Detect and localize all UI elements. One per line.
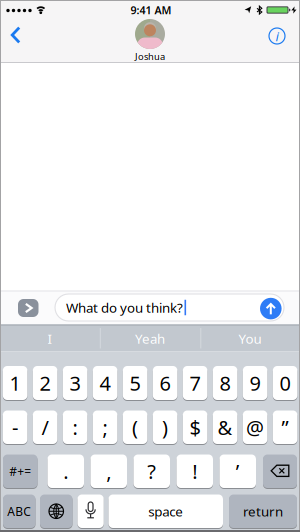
- staticText: .: [63, 458, 68, 485]
- button[interactable]: Back: [6, 24, 28, 46]
- staticText: (: [132, 414, 138, 441]
- button[interactable]: return: [229, 494, 297, 528]
- staticText: ABC: [7, 503, 31, 519]
- staticText: ’: [236, 458, 240, 485]
- button[interactable]: ABC: [3, 494, 35, 528]
- button[interactable]: Yeah: [102, 326, 198, 350]
- button[interactable]: 5: [123, 366, 147, 400]
- button[interactable]: Message field: [55, 294, 284, 321]
- staticText: You: [238, 330, 261, 347]
- button[interactable]: Send: [260, 298, 282, 319]
- staticText: Joshua: [135, 50, 165, 63]
- button[interactable]: 9: [243, 366, 267, 400]
- button[interactable]: 1: [3, 366, 27, 400]
- staticText: What do you think?: [66, 299, 183, 316]
- button[interactable]: ): [153, 410, 177, 444]
- staticText: ?: [147, 458, 156, 485]
- staticText: i: [275, 27, 278, 45]
- button[interactable]: !: [176, 454, 213, 488]
- button[interactable]: #+=: [3, 454, 37, 488]
- staticText: #+=: [9, 463, 31, 479]
- staticText: 3: [70, 370, 81, 396]
- button[interactable]: (: [123, 410, 147, 444]
- staticText: $: [190, 414, 201, 441]
- button[interactable]: space: [108, 494, 223, 528]
- staticText: 9:41 AM: [130, 3, 171, 17]
- staticText: I: [47, 330, 52, 347]
- button[interactable]: ’: [219, 454, 256, 488]
- staticText: 9: [250, 370, 261, 396]
- staticText: :: [73, 414, 78, 441]
- button[interactable]: $: [183, 410, 207, 444]
- button[interactable]: 6: [153, 366, 177, 400]
- staticText: 7: [190, 370, 201, 396]
- staticText: 8: [220, 370, 231, 396]
- button[interactable]: 0: [273, 366, 297, 400]
- staticText: 6: [160, 370, 171, 396]
- button[interactable]: Apps: [18, 299, 38, 317]
- staticText: !: [192, 458, 197, 485]
- button[interactable]: 8: [213, 366, 237, 400]
- staticText: ;: [103, 414, 108, 441]
- button[interactable]: -: [3, 410, 27, 444]
- button[interactable]: ?: [133, 454, 170, 488]
- button[interactable]: Next keyboard: [40, 494, 72, 528]
- staticText: 0: [280, 370, 291, 396]
- staticText: -: [12, 414, 18, 441]
- staticText: return: [243, 502, 283, 520]
- button[interactable]: Details: [269, 27, 285, 45]
- staticText: 1: [10, 370, 21, 396]
- staticText: @: [246, 414, 264, 441]
- staticText: 4: [100, 370, 111, 396]
- button[interactable]: Delete: [263, 454, 297, 488]
- staticText: &: [218, 414, 233, 441]
- staticText: ): [162, 414, 168, 441]
- button[interactable]: ;: [93, 410, 117, 444]
- button[interactable]: /: [33, 410, 57, 444]
- staticText: ,: [106, 458, 111, 485]
- staticText: 5: [130, 370, 141, 396]
- button[interactable]: 4: [93, 366, 117, 400]
- button[interactable]: &: [213, 410, 237, 444]
- staticText: /: [42, 414, 49, 441]
- button[interactable]: Joshua profile: [135, 19, 165, 49]
- staticText: ”: [282, 414, 289, 441]
- staticText: Yeah: [135, 330, 165, 347]
- button[interactable]: 3: [63, 366, 87, 400]
- button[interactable]: You: [202, 326, 298, 350]
- button[interactable]: .: [47, 454, 84, 488]
- button[interactable]: 2: [33, 366, 57, 400]
- button[interactable]: @: [243, 410, 267, 444]
- staticText: 2: [40, 370, 51, 396]
- button[interactable]: I: [2, 326, 98, 350]
- button[interactable]: ,: [90, 454, 127, 488]
- button[interactable]: Dictate: [77, 494, 104, 528]
- button[interactable]: :: [63, 410, 87, 444]
- button[interactable]: 7: [183, 366, 207, 400]
- button[interactable]: ”: [273, 410, 297, 444]
- staticText: space: [148, 502, 183, 520]
